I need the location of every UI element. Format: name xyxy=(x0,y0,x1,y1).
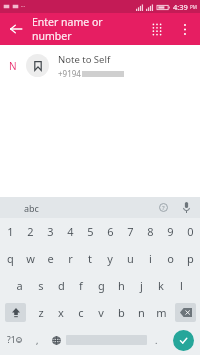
button[interactable]: 7 xyxy=(120,218,140,245)
button[interactable]: t xyxy=(80,245,100,272)
staticText: k xyxy=(158,278,164,293)
button[interactable]: r xyxy=(60,245,80,272)
button[interactable]: 0 xyxy=(180,218,200,245)
button[interactable]: v xyxy=(91,299,111,326)
button[interactable]: p xyxy=(180,245,200,272)
staticText: . xyxy=(155,334,158,346)
staticText: 5 xyxy=(87,224,94,239)
staticText: 7 xyxy=(127,224,134,239)
staticText: 1 xyxy=(7,224,14,239)
staticText: 4 xyxy=(67,224,74,239)
button[interactable]: Help xyxy=(152,197,174,218)
staticText: +9194 xyxy=(58,68,81,79)
staticText: Enter name or number xyxy=(32,15,142,43)
button[interactable]: m xyxy=(151,299,171,326)
staticText: a xyxy=(16,278,23,293)
staticText: w xyxy=(26,251,35,266)
button[interactable]: i xyxy=(140,245,160,272)
button[interactable]: Change language xyxy=(47,326,66,354)
staticText: b xyxy=(118,305,125,320)
button[interactable]: a xyxy=(9,272,30,299)
staticText: o xyxy=(167,251,174,266)
staticText: q xyxy=(7,251,14,266)
staticText: n xyxy=(138,305,145,320)
button[interactable]: , xyxy=(28,326,47,354)
button[interactable]: l xyxy=(171,272,191,299)
button[interactable]: y xyxy=(100,245,120,272)
button[interactable]: h xyxy=(111,272,131,299)
button[interactable]: q xyxy=(0,245,20,272)
staticText: ··· xyxy=(21,3,26,10)
staticText: , xyxy=(36,334,39,346)
staticText: Note to Self xyxy=(58,53,111,66)
button[interactable]: n xyxy=(131,299,151,326)
button[interactable]: c xyxy=(71,299,91,326)
button[interactable]: f xyxy=(71,272,91,299)
button[interactable]: b xyxy=(111,299,131,326)
staticText: g xyxy=(98,278,105,293)
button[interactable]: g xyxy=(91,272,111,299)
staticText: l xyxy=(180,278,183,293)
button[interactable]: Voice input xyxy=(174,197,198,218)
button[interactable]: abc xyxy=(0,197,62,218)
staticText: p xyxy=(187,251,194,266)
staticText: d xyxy=(58,278,65,293)
button[interactable]: Done xyxy=(173,330,194,351)
staticText: i xyxy=(149,251,152,266)
staticText: c xyxy=(78,305,84,320)
staticText: m xyxy=(156,305,167,320)
staticText: 3 xyxy=(47,224,54,239)
button[interactable]: More options xyxy=(172,16,198,42)
staticText: s xyxy=(38,278,44,293)
staticText: e xyxy=(47,251,54,266)
button[interactable]: N xyxy=(0,45,200,86)
staticText: PM xyxy=(190,4,197,10)
button[interactable]: Back xyxy=(0,13,32,45)
button[interactable]: 5 xyxy=(80,218,100,245)
button[interactable]: . xyxy=(147,326,166,354)
staticText: x xyxy=(58,305,64,320)
button[interactable]: s xyxy=(30,272,51,299)
button[interactable]: d xyxy=(51,272,71,299)
staticText: 8 xyxy=(147,224,154,239)
button[interactable]: 1 xyxy=(0,218,20,245)
staticText: 4:39 xyxy=(173,2,188,12)
button[interactable]: x xyxy=(51,299,71,326)
button[interactable]: Shift xyxy=(5,303,26,322)
button[interactable]: z xyxy=(30,299,51,326)
button[interactable]: Dialpad xyxy=(142,14,172,44)
staticText: 9 xyxy=(167,224,174,239)
staticText: ?1 xyxy=(7,334,16,346)
staticText: f xyxy=(79,278,83,293)
staticText: h xyxy=(118,278,125,293)
button[interactable]: 8 xyxy=(140,218,160,245)
staticText: ? xyxy=(162,204,165,212)
button[interactable]: o xyxy=(160,245,180,272)
staticText: t xyxy=(88,251,92,266)
button[interactable]: 6 xyxy=(100,218,120,245)
button[interactable]: 3 xyxy=(40,218,60,245)
staticText: v xyxy=(98,305,104,320)
staticText: 2 xyxy=(27,224,34,239)
staticText: y xyxy=(107,251,113,266)
button[interactable]: ?1 xyxy=(0,326,28,354)
button[interactable]: 2 xyxy=(20,218,40,245)
staticText: z xyxy=(38,305,44,320)
staticText: r xyxy=(68,251,73,266)
button[interactable]: 9 xyxy=(160,218,180,245)
staticText: 0 xyxy=(187,224,194,239)
button[interactable]: 4 xyxy=(60,218,80,245)
button[interactable]: w xyxy=(20,245,40,272)
button[interactable]: Backspace xyxy=(175,303,196,322)
staticText: u xyxy=(127,251,134,266)
staticText: N xyxy=(9,59,17,73)
staticText: j xyxy=(140,278,143,293)
button[interactable]: e xyxy=(40,245,60,272)
button[interactable]: k xyxy=(151,272,171,299)
staticText: abc xyxy=(24,202,39,214)
staticText: 6 xyxy=(107,224,114,239)
button[interactable]: u xyxy=(120,245,140,272)
button[interactable]: j xyxy=(131,272,151,299)
